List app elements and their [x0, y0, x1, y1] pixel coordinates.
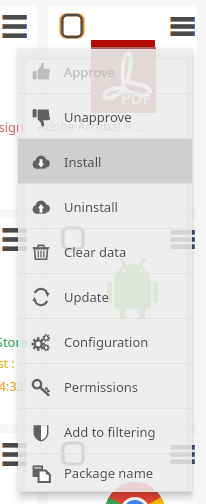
staticText: PDF [121, 87, 151, 109]
staticText: Install [64, 153, 102, 171]
button[interactable]: Install [18, 139, 192, 184]
button[interactable]: Unapprove [18, 94, 192, 139]
staticText: Unapprove [64, 108, 132, 126]
staticText: Permissions [64, 378, 139, 396]
button[interactable]: Permissions [18, 364, 192, 409]
staticText: Add to filtering [64, 423, 156, 441]
button[interactable]: Clear data [18, 229, 192, 274]
staticText: Configuration [64, 333, 149, 351]
button[interactable]: Add to filtering [18, 409, 192, 454]
staticText: Uninstall [64, 198, 118, 216]
staticText: Latest : [0, 355, 15, 371]
staticText: Update [64, 288, 109, 306]
staticText: Approve [64, 63, 115, 81]
staticText: App Design [0, 118, 25, 136]
button[interactable]: Update [18, 274, 192, 319]
staticText: Clear data [64, 243, 127, 261]
button[interactable]: Configuration [18, 319, 192, 364]
staticText: Package name [64, 464, 154, 482]
staticText: Adobe Acrobat R... [38, 118, 142, 134]
button[interactable]: Uninstall [18, 184, 192, 229]
staticText: Google Play Store. [0, 333, 32, 351]
button[interactable]: Package name [18, 454, 192, 492]
staticText: 14:32 [0, 377, 25, 395]
button[interactable]: Approve [18, 49, 192, 94]
